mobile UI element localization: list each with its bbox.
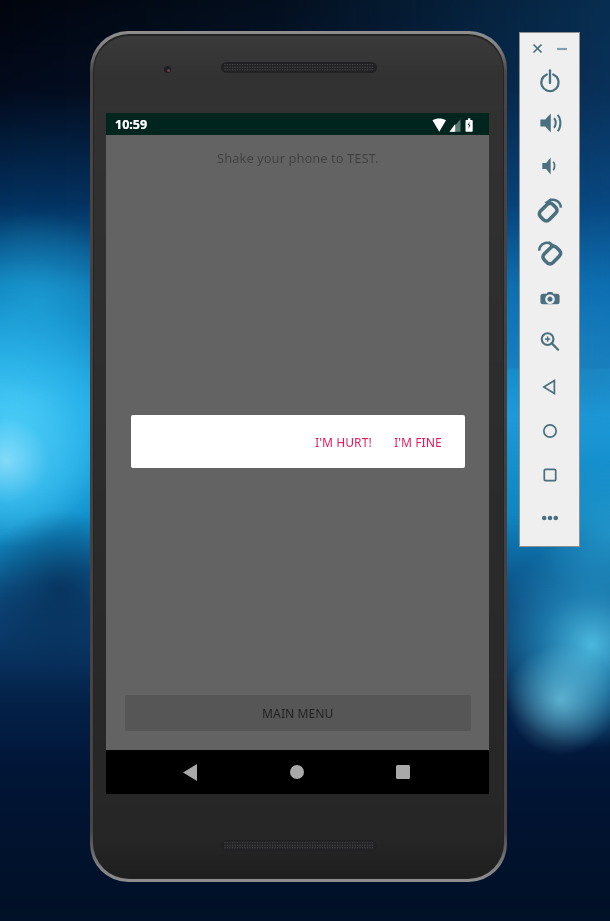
button[interactable]: I'M HURT!	[303, 425, 382, 459]
button[interactable]: Overview	[529, 455, 570, 495]
button[interactable]: Rotate left	[529, 190, 570, 230]
staticText: MAIN MENU	[262, 705, 334, 721]
button[interactable]: Recent apps	[379, 750, 427, 794]
button[interactable]: Take screenshot	[529, 279, 570, 319]
button[interactable]: Zoom	[529, 322, 570, 362]
button[interactable]: Home	[273, 750, 321, 794]
staticText: I'M FINE	[394, 434, 442, 450]
staticText: 10:59	[115, 116, 148, 133]
button[interactable]: Minimize	[552, 39, 571, 58]
button[interactable]: Power	[529, 61, 570, 101]
button[interactable]: Back	[529, 367, 570, 407]
button[interactable]: Close	[528, 39, 547, 58]
button[interactable]: Rotate right	[529, 233, 570, 273]
button[interactable]: Volume down	[529, 146, 570, 186]
button[interactable]: Volume up	[529, 103, 570, 143]
staticText: I'M HURT!	[315, 434, 372, 450]
button[interactable]: More	[529, 498, 570, 538]
button[interactable]: I'M FINE	[382, 425, 465, 459]
staticText: Shake your phone to TEST.	[217, 149, 379, 167]
button[interactable]: Home	[529, 411, 570, 451]
button[interactable]: Back	[166, 750, 214, 794]
button[interactable]: MAIN MENU	[125, 695, 471, 731]
